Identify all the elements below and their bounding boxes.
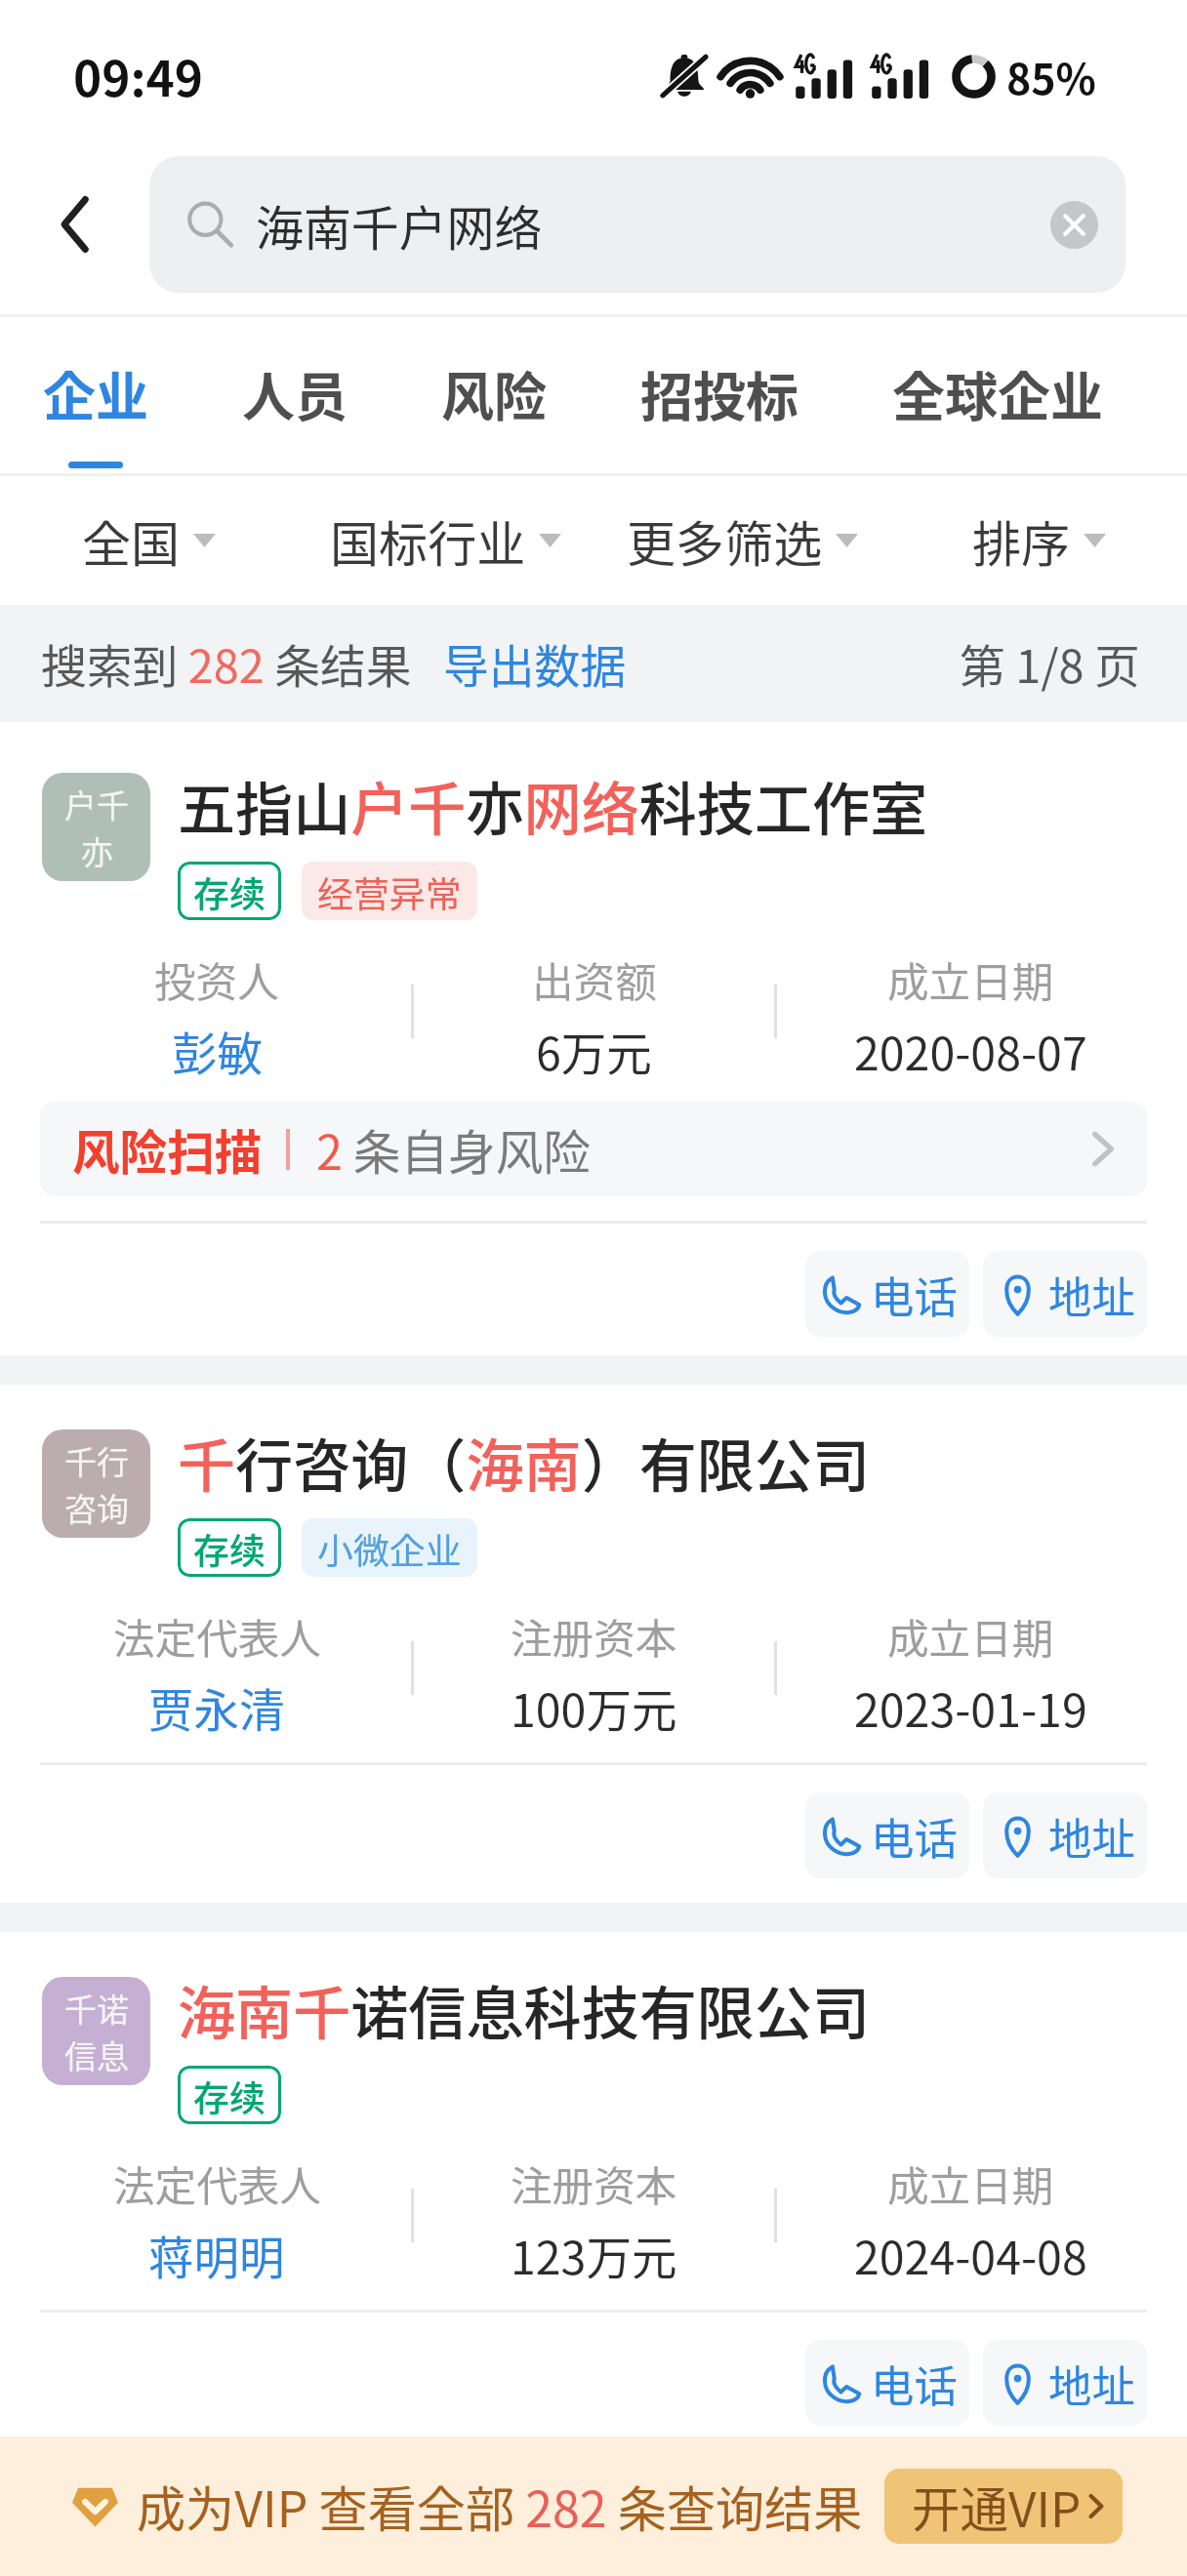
staticText: 地址 [1048,1263,1135,1325]
staticText: 户千 [64,781,129,827]
button[interactable]: 地址 [983,1792,1147,1878]
button[interactable]: 风险 [441,317,640,468]
staticText: 电话 [871,1804,958,1867]
staticText: 地址 [1048,1804,1135,1867]
staticText: 出资额 [532,949,657,1010]
staticText: 贾永清 [148,1674,285,1740]
button[interactable]: 电话 [805,1792,969,1878]
staticText: 风险扫描 [72,1115,263,1184]
staticText: 法定代表人 [113,2153,321,2214]
staticText: 电话 [871,2352,958,2414]
staticText: 6万元 [536,1018,652,1083]
staticText: 2023-01-19 [854,1674,1087,1740]
staticText: 五指山户千亦网络科技工作室 [178,763,928,847]
button[interactable]: 全国 [0,476,297,605]
staticText: 成为VIP 查看全部 282 条查询结果 [137,2471,863,2542]
staticText: 成立日期 [887,2153,1054,2214]
staticText: 小微企业 [317,1522,462,1574]
staticText: 电话 [871,1263,958,1325]
button[interactable]: 排序 [890,476,1187,605]
staticText: 法定代表人 [113,1606,321,1667]
staticText: 排序 [972,505,1071,577]
button[interactable]: Back [0,119,149,329]
button[interactable]: 海南千户网络 [149,156,1126,293]
staticText: 导出数据 [443,630,627,697]
staticText: 更多筛选 [627,505,823,577]
staticText: 亦 [81,827,113,874]
staticText: 85% [1006,46,1096,106]
staticText: 信息 [64,2032,129,2078]
staticText: 存续 [193,865,266,917]
staticText: 蒋明明 [148,2222,285,2287]
staticText: 人员 [242,355,348,431]
button[interactable]: 电话 [805,1251,969,1337]
staticText: 千行 [64,1437,129,1484]
staticText: 地址 [1048,2352,1135,2414]
staticText: 海南千户网络 [256,190,543,260]
staticText: 千行咨询（海南）有限公司 [178,1420,871,1504]
staticText: 成立日期 [887,949,1054,1010]
staticText: 全球企业 [892,355,1103,431]
staticText: 开通VIP [912,2472,1082,2542]
staticText: 经营异常 [317,865,462,917]
staticText: 千诺 [64,1985,129,2032]
staticText: 招投标 [640,355,798,431]
button[interactable]: 导出数据 [443,630,627,697]
button[interactable]: 招投标 [640,317,892,468]
button[interactable]: 更多筛选 [593,476,890,605]
staticText: 第 1/8 页 [960,630,1140,697]
button[interactable]: 风险扫描 [40,1102,1147,1196]
staticText: 国标行业 [330,505,526,577]
staticText: 咨询 [64,1484,129,1531]
staticText: 风险 [441,355,547,431]
staticText: 投资人 [154,949,279,1010]
staticText: 2 条自身风险 [316,1115,591,1184]
staticText: 企业 [43,355,148,431]
staticText: 搜索到 282 条结果 [41,630,412,697]
button[interactable]: 成为VIP 查看全部 282 条查询结果 [0,2436,1187,2576]
staticText: 2024-04-08 [854,2222,1087,2287]
staticText: 成立日期 [887,1606,1054,1667]
button[interactable]: 电话 [805,2340,969,2426]
staticText: 2020-08-07 [854,1018,1087,1083]
button[interactable]: 人员 [242,317,441,468]
button[interactable]: 地址 [983,1251,1147,1337]
staticText: 彭敏 [172,1018,263,1083]
staticText: 123万元 [511,2222,677,2287]
button[interactable]: 地址 [983,2340,1147,2426]
staticText: 注册资本 [511,2153,677,2214]
button[interactable]: 开通VIP [884,2469,1123,2544]
staticText: 存续 [193,2070,266,2121]
staticText: 09:49 [73,41,203,111]
button[interactable]: 企业 [43,317,242,468]
button[interactable]: 全球企业 [892,317,1103,468]
staticText: 100万元 [511,1674,677,1740]
staticText: 注册资本 [511,1606,677,1667]
staticText: 全国 [82,505,181,577]
staticText: 海南千诺信息科技有限公司 [178,1967,871,2051]
button[interactable]: Clear search [1023,156,1126,293]
button[interactable]: 国标行业 [297,476,593,605]
staticText: 存续 [193,1522,266,1574]
